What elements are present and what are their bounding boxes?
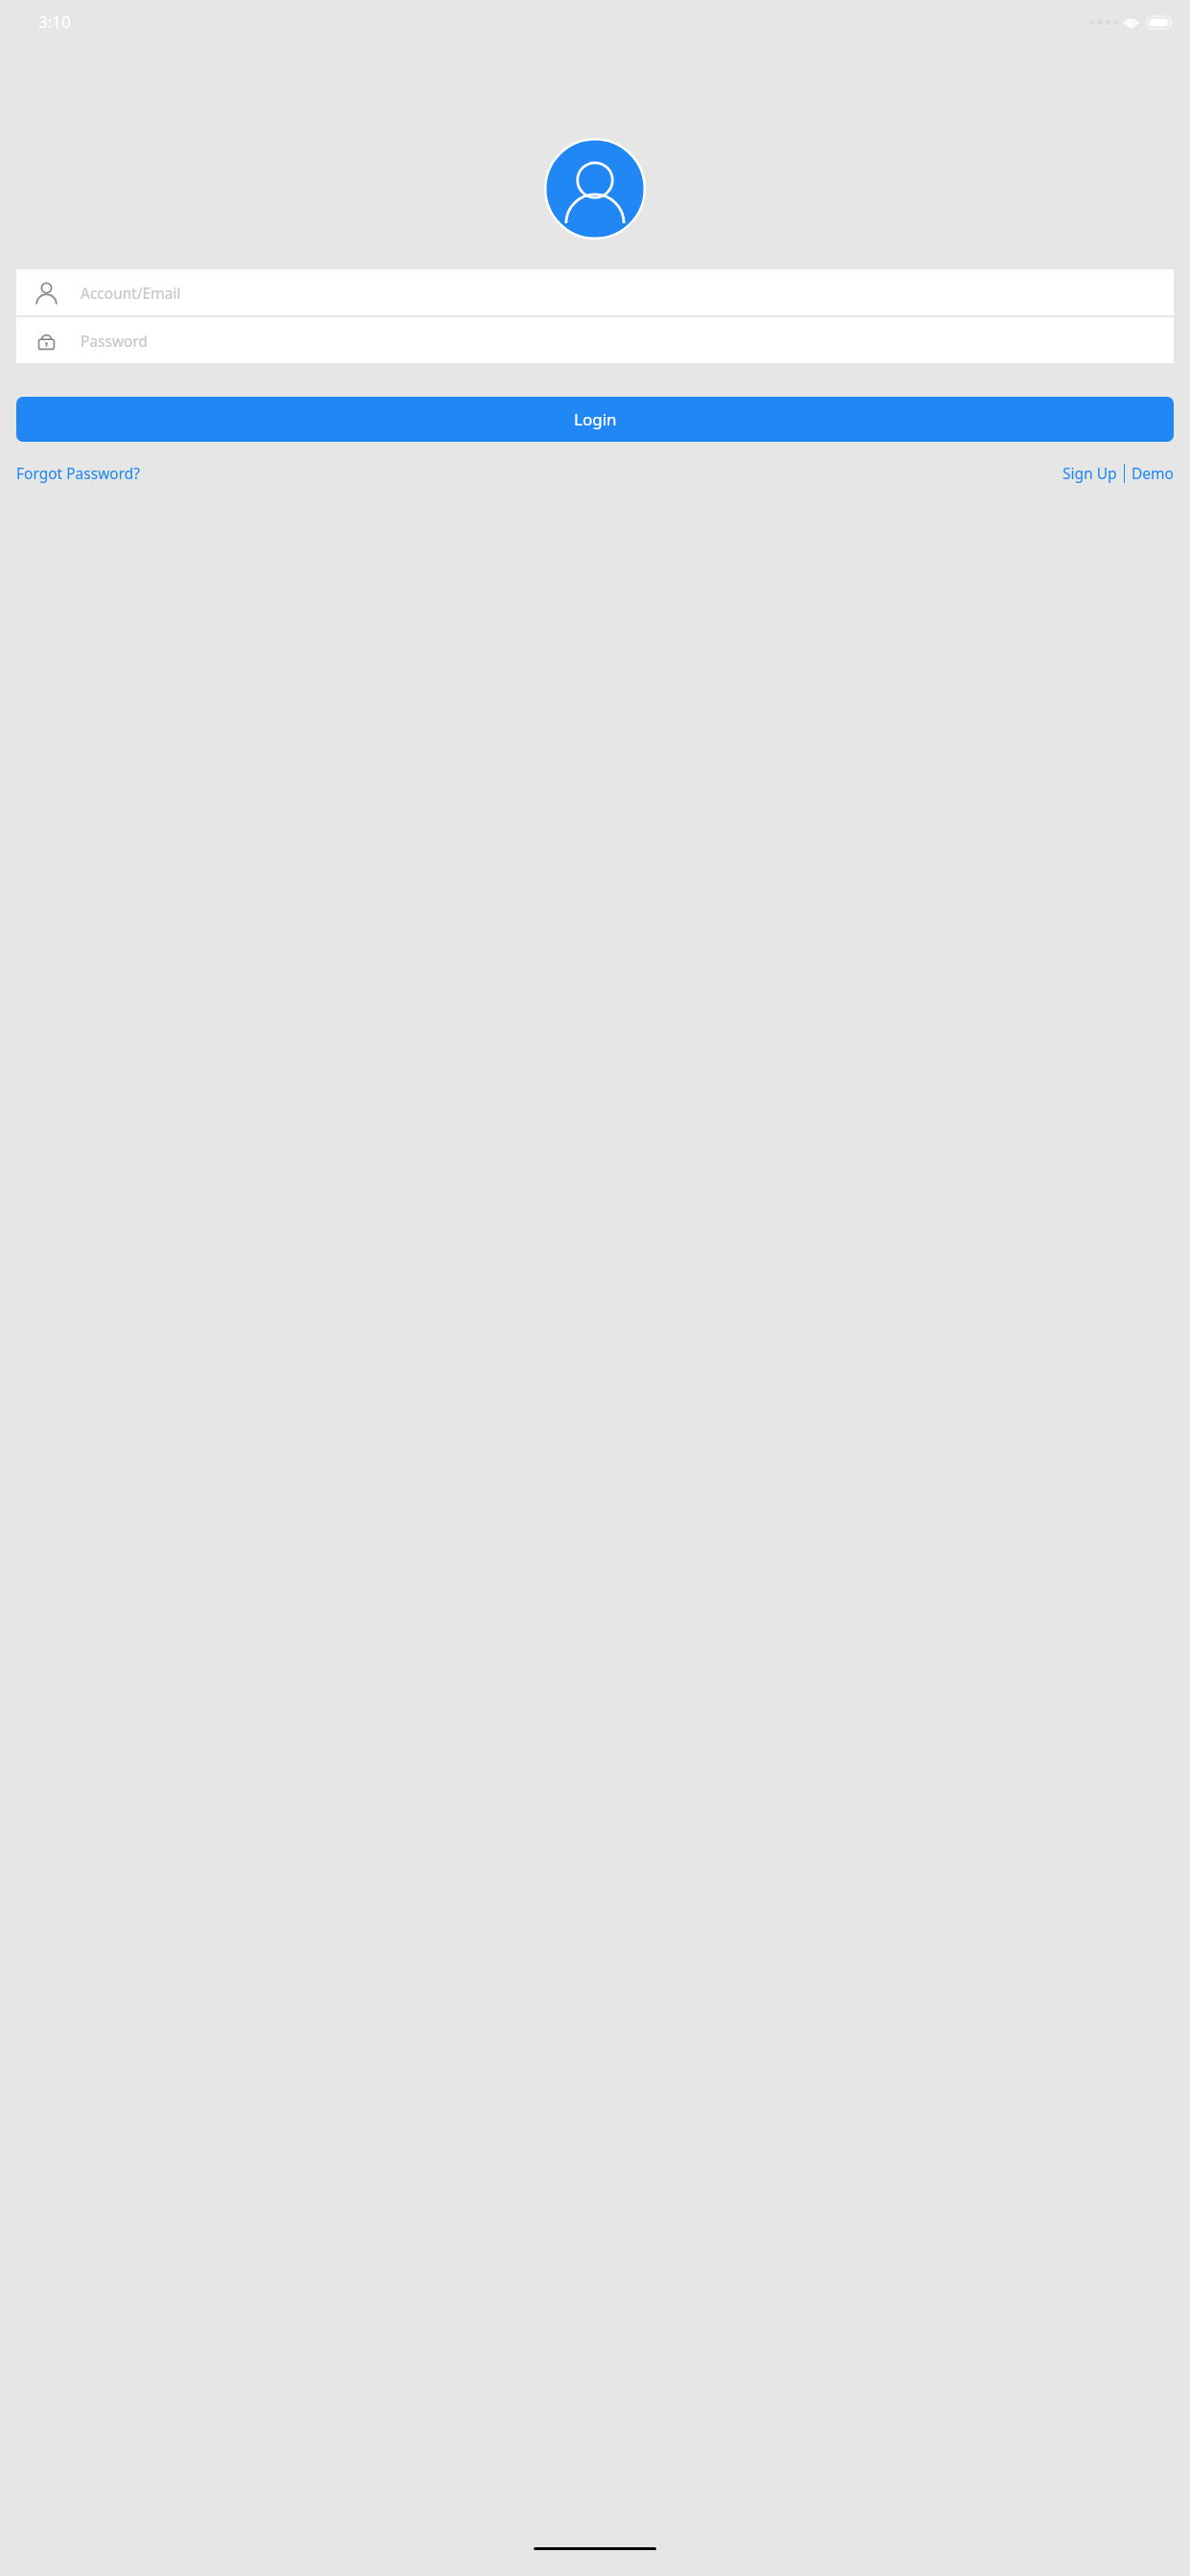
- staticText: Password: [80, 331, 149, 351]
- button[interactable]: Forgot Password?: [16, 463, 141, 483]
- staticText: Login: [574, 408, 617, 430]
- staticText: Sign Up: [1063, 463, 1117, 483]
- other: Profile avatar: [544, 138, 646, 240]
- button[interactable]: Demo: [1132, 463, 1174, 483]
- staticText: Demo: [1132, 463, 1174, 483]
- staticText: Account/Email: [80, 283, 181, 303]
- button[interactable]: Password: [16, 317, 1174, 363]
- staticText: Forgot Password?: [16, 463, 141, 483]
- staticText: 3:10: [38, 11, 71, 33]
- button[interactable]: Sign Up: [1063, 463, 1117, 483]
- button[interactable]: Account/Email: [16, 269, 1174, 315]
- button[interactable]: Login: [16, 397, 1174, 442]
